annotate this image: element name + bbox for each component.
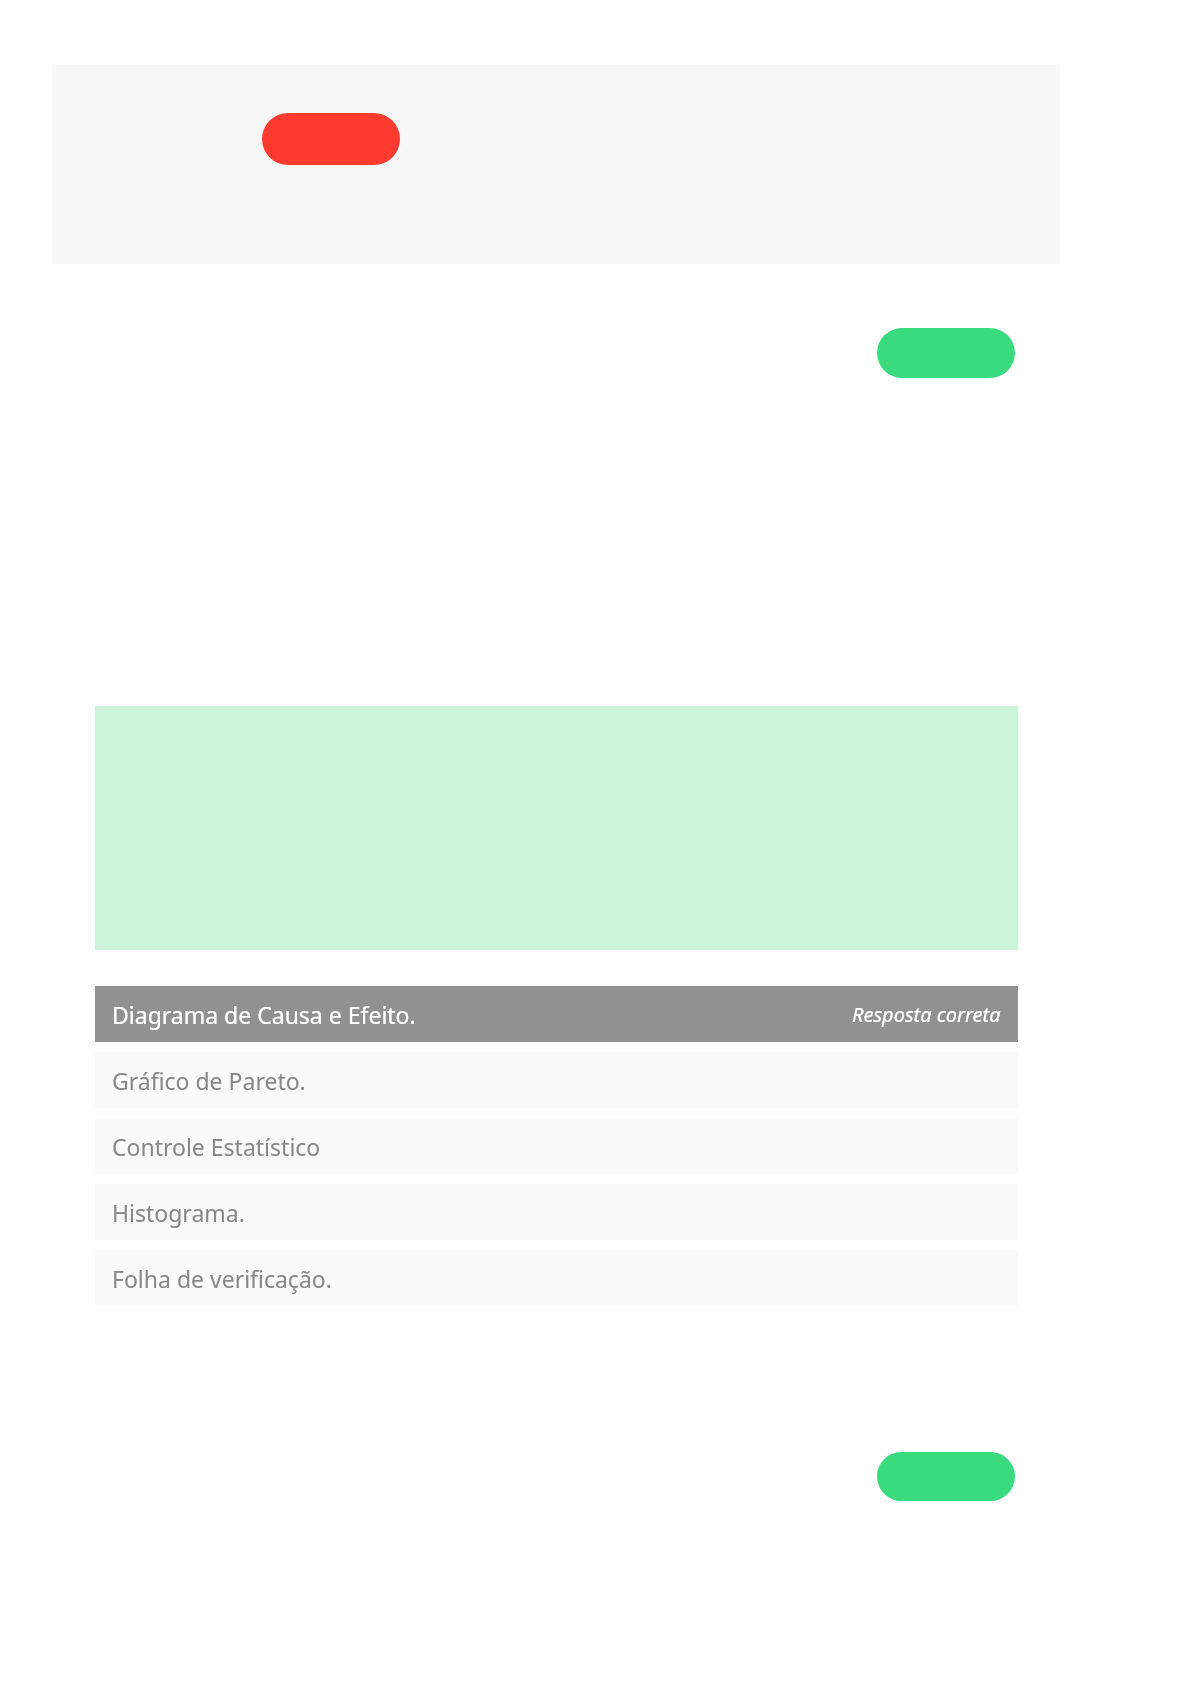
button[interactable]: Parar xyxy=(262,113,400,165)
button[interactable]: Próxima xyxy=(877,1452,1015,1501)
button[interactable]: Controle Estatístico xyxy=(95,1118,1018,1174)
staticText: Folha de verificação. xyxy=(112,1263,332,1294)
button[interactable]: Histograma. xyxy=(95,1184,1018,1240)
button[interactable]: Gráfico de Pareto. xyxy=(95,1052,1018,1108)
staticText: Gráfico de Pareto. xyxy=(112,1065,306,1096)
staticText: Resposta correta xyxy=(852,1001,1001,1028)
staticText: Controle Estatístico xyxy=(112,1131,321,1162)
button[interactable]: Folha de verificação. xyxy=(95,1250,1018,1306)
staticText: Histograma. xyxy=(112,1197,245,1228)
staticText: Diagrama de Causa e Efeito. xyxy=(112,999,416,1030)
button[interactable]: Diagrama de Causa e Efeito. xyxy=(95,986,1018,1042)
button[interactable]: Continuar xyxy=(877,328,1015,378)
